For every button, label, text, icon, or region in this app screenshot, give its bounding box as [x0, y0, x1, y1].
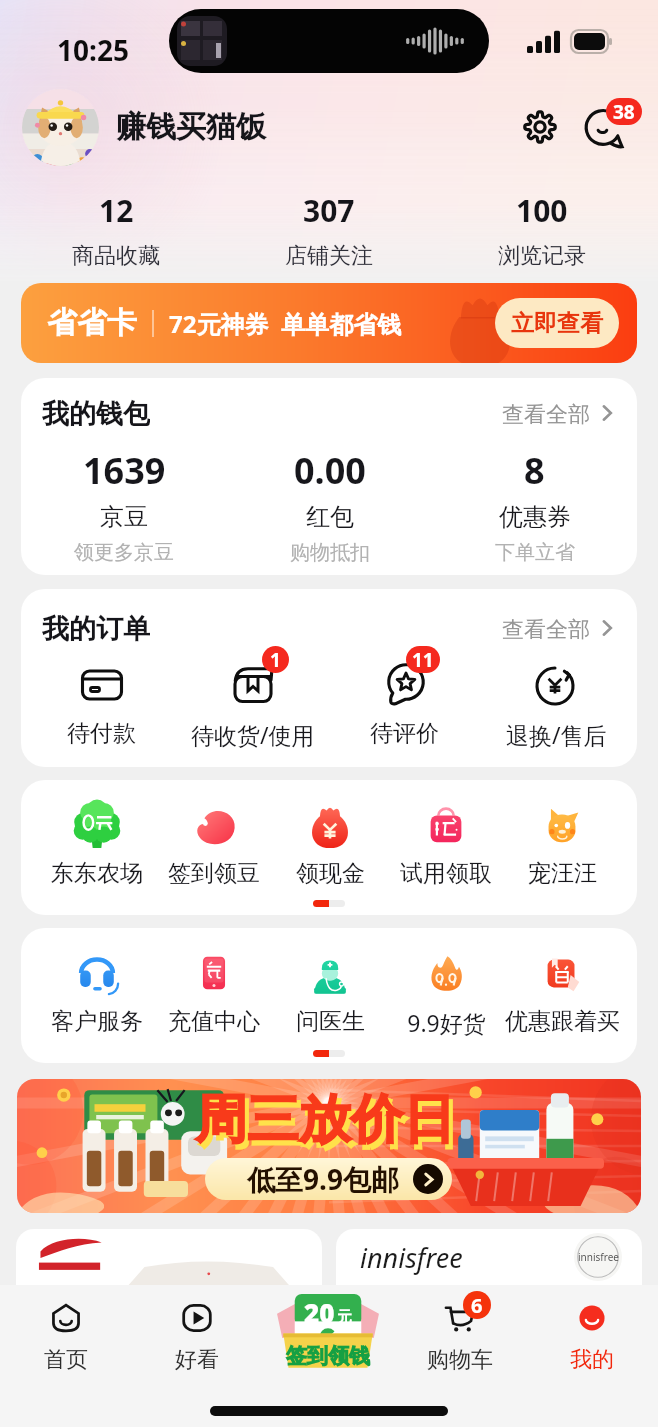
staticText: 店铺关注: [285, 242, 373, 268]
staticText: 购物抵扣: [290, 540, 370, 565]
staticText: 商品收藏: [72, 242, 160, 268]
button[interactable]: 优惠跟着买: [504, 949, 620, 1036]
button[interactable]: 1: [177, 646, 328, 750]
staticText: 签到领豆: [168, 859, 260, 888]
button[interactable]: 赚钱买猫饭: [116, 108, 266, 146]
button[interactable]: 头像 Avatar: [22, 89, 99, 166]
staticText: 38: [613, 99, 635, 125]
staticText: 20: [304, 1295, 335, 1330]
staticText: 省省卡: [47, 304, 137, 342]
button[interactable]: 省省卡: [21, 283, 637, 363]
button[interactable]: 问医生: [272, 949, 388, 1036]
staticText: 待评价: [370, 719, 439, 748]
staticText: 10:25: [57, 31, 129, 69]
button[interactable]: 待付款: [26, 646, 177, 748]
staticText: 12: [99, 190, 134, 231]
button[interactable]: 我的: [526, 1285, 658, 1374]
staticText: 下单立省: [495, 540, 575, 565]
button[interactable]: 查看全部: [499, 397, 618, 429]
staticText: 9.9好货: [407, 1007, 486, 1038]
staticText: 查看全部: [502, 616, 590, 640]
staticText: 好看: [175, 1346, 219, 1374]
button[interactable]: 9.9好货: [388, 949, 504, 1038]
staticText: 退换/售后: [506, 719, 607, 750]
staticText: 红包: [306, 502, 354, 532]
staticText: 东东农场: [51, 859, 143, 888]
button[interactable]: 查看全部: [499, 612, 618, 644]
button[interactable]: 6: [394, 1285, 526, 1374]
button[interactable]: 设置 Settings: [516, 103, 564, 151]
staticText: 领现金: [296, 859, 365, 888]
staticText: 待收货/使用: [191, 719, 315, 750]
staticText: 优惠跟着买: [505, 1007, 620, 1036]
staticText: 8: [524, 446, 545, 495]
button[interactable]: 试用领取: [388, 801, 504, 888]
button[interactable]: 307: [222, 184, 435, 268]
staticText: 客户服务: [51, 1007, 143, 1036]
button[interactable]: 签到领豆: [155, 801, 272, 888]
staticText: 周三放价日: [199, 1092, 459, 1158]
staticText: 100: [516, 190, 568, 231]
button[interactable]: 首页: [0, 1285, 131, 1374]
staticText: 周三放价日: [195, 1087, 455, 1153]
button[interactable]: 退换/售后: [480, 646, 632, 750]
staticText: 购物车: [427, 1346, 493, 1374]
staticText: 6: [471, 1292, 483, 1319]
staticText: 我的: [570, 1346, 614, 1374]
staticText: 查看全部: [502, 401, 590, 425]
button[interactable]: 11: [328, 646, 480, 748]
staticText: 0.00: [294, 446, 366, 495]
staticText: 我的订单: [42, 612, 150, 644]
staticText: 问医生: [296, 1007, 365, 1036]
staticText: 京豆: [100, 502, 148, 532]
button[interactable]: 低至9.9包邮: [205, 1158, 452, 1200]
staticText: 浏览记录: [498, 242, 586, 268]
staticText: 72元神券 单单都省钱: [169, 307, 401, 340]
staticText: 试用领取: [400, 859, 492, 888]
button[interactable]: 签到领钱 Sign in for rewards: [276, 1294, 380, 1370]
staticText: 领更多京豆: [74, 540, 174, 565]
button[interactable]: [16, 1229, 322, 1285]
staticText: 首页: [44, 1346, 88, 1374]
staticText: 充值中心: [168, 1007, 260, 1036]
button[interactable]: 消息 Messages 38: [582, 101, 634, 153]
staticText: 1639: [83, 446, 166, 495]
button[interactable]: 0.00: [227, 446, 432, 565]
button[interactable]: 领现金: [272, 801, 388, 888]
staticText: 立即查看: [511, 309, 603, 338]
staticText: 低至9.9包邮: [247, 1160, 399, 1198]
staticText: 优惠券: [499, 502, 571, 532]
staticText: 宠汪汪: [528, 859, 597, 888]
button[interactable]: 1639: [21, 446, 227, 565]
button[interactable]: 宠汪汪: [504, 801, 620, 888]
staticText: 待付款: [67, 719, 136, 748]
staticText: 签到领钱: [286, 1343, 370, 1369]
staticText: innisfree: [578, 1250, 619, 1264]
staticText: 元: [337, 1308, 352, 1327]
staticText: 307: [303, 190, 355, 231]
button[interactable]: innisfree: [336, 1229, 642, 1285]
button[interactable]: 好看: [131, 1285, 262, 1374]
button[interactable]: 充值中心: [155, 949, 272, 1036]
button[interactable]: 周三放价日: [17, 1079, 641, 1213]
button[interactable]: 12: [10, 184, 222, 268]
button[interactable]: 立即查看: [495, 298, 619, 348]
staticText: 1: [270, 647, 281, 673]
staticText: innisfree: [360, 1239, 463, 1276]
button[interactable]: 东东农场: [38, 801, 155, 888]
button[interactable]: 客户服务: [38, 949, 155, 1036]
button[interactable]: 8: [432, 446, 637, 565]
staticText: 我的钱包: [42, 397, 150, 429]
staticText: 11: [412, 647, 434, 673]
button[interactable]: 100: [435, 184, 648, 268]
